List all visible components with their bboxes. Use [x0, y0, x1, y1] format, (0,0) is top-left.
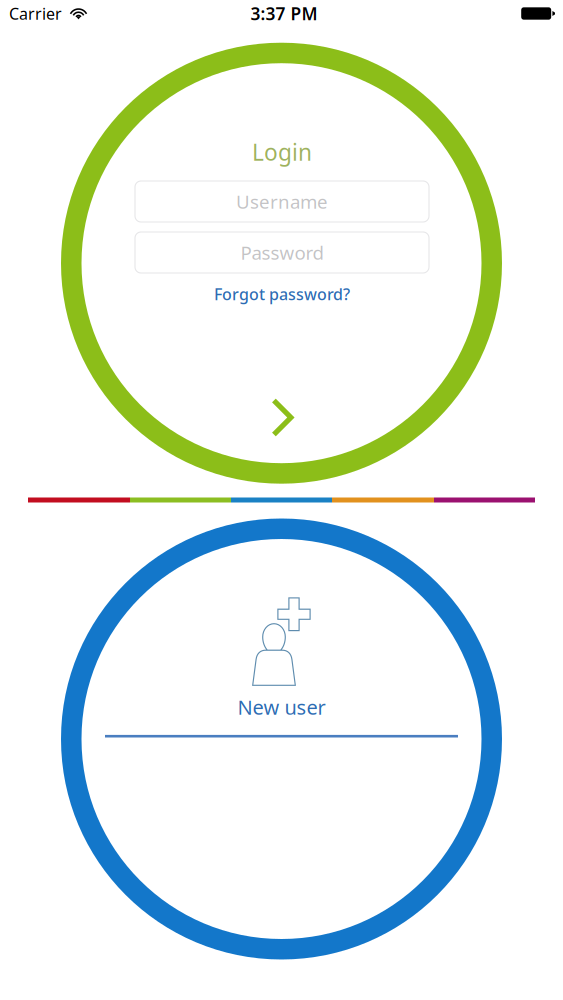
staticText: Forgot password?: [214, 283, 350, 305]
staticText: New user: [237, 694, 325, 720]
staticText: Password: [240, 240, 323, 265]
button[interactable]: New user: [105, 597, 458, 737]
button[interactable]: Forgot password?: [135, 279, 429, 309]
button[interactable]: Password: [135, 232, 429, 273]
button[interactable]: Continue: [254, 389, 310, 445]
staticText: Login: [252, 137, 312, 167]
staticText: Username: [236, 189, 328, 214]
staticText: Carrier: [9, 3, 62, 24]
button[interactable]: Username: [135, 181, 429, 222]
staticText: 3:37 PM: [250, 2, 317, 25]
